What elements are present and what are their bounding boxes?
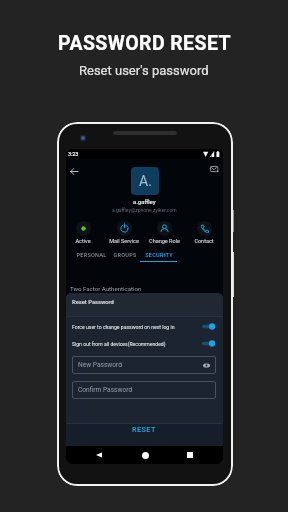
staticText: GROUPS [113, 252, 137, 258]
button[interactable]: RESET [122, 422, 166, 437]
button[interactable]: Active [66, 221, 101, 244]
staticText: RESET [132, 425, 156, 434]
button[interactable]: PERSONAL [72, 252, 110, 262]
staticText: Contact [194, 238, 214, 244]
button[interactable]: Contact [186, 221, 222, 244]
staticText: Mail Service [109, 238, 139, 244]
staticText: Reset user's password [79, 63, 209, 78]
button[interactable]: Home [138, 448, 152, 462]
button[interactable]: Mail Service [106, 221, 142, 244]
staticText: Reset Password [72, 299, 114, 306]
staticText: a.gaffley [133, 198, 156, 205]
button[interactable]: Recents [183, 448, 197, 462]
button[interactable]: Mail [206, 161, 222, 177]
button[interactable]: GROUPS [110, 252, 140, 262]
other: Show password [203, 362, 210, 369]
button[interactable]: Change Role [146, 221, 182, 244]
staticText: Two Factor Authentication [70, 285, 142, 292]
button[interactable]: New Password [72, 356, 216, 374]
staticText: 3:23 [68, 151, 79, 157]
staticText: PERSONAL [76, 252, 107, 258]
staticText: Force user to change password on next lo… [72, 324, 202, 330]
button[interactable]: SECURITY [140, 252, 177, 262]
staticText: PASSWORD RESET [58, 32, 231, 55]
button[interactable]: Back [66, 163, 82, 179]
staticText: Confirm Password [78, 386, 133, 394]
staticText: SECURITY [145, 252, 173, 258]
button[interactable]: Confirm Password [72, 381, 216, 399]
button[interactable]: Sign out from all devices(Recommended) [72, 340, 216, 347]
button[interactable]: Back [92, 448, 106, 462]
staticText: Change Role [149, 238, 180, 244]
staticText: New Password [78, 361, 122, 369]
staticText: A. [139, 173, 152, 189]
staticText: Sign out from all devices(Recommended) [72, 341, 202, 347]
button[interactable]: Force user to change password on next lo… [72, 323, 216, 330]
staticText: a.gaffley@zphone.zyiker.com [112, 207, 177, 213]
staticText: Active [75, 238, 91, 244]
